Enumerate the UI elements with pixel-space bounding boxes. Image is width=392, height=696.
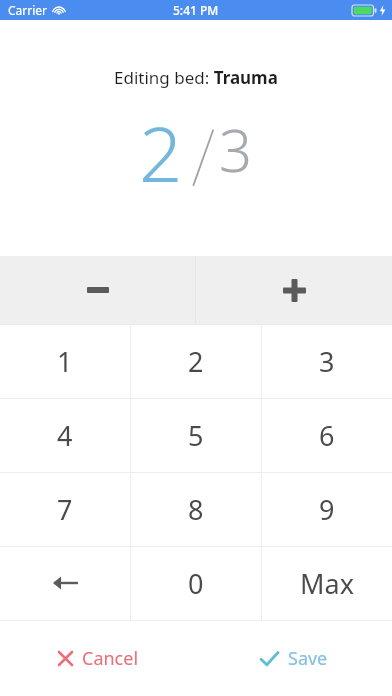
button[interactable]: 4 [0,398,130,472]
button[interactable]: Increase [196,256,392,324]
button[interactable]: 0 [131,546,261,620]
staticText: 9 [319,491,335,528]
button[interactable]: Max [262,546,392,620]
staticText: 3 [319,343,335,380]
staticText: 2 [139,101,183,191]
button[interactable]: Save [196,620,392,696]
button[interactable]: 6 [262,398,392,472]
staticText: 7 [57,491,73,528]
staticText: 1 [57,343,73,380]
button[interactable]: Backspace [0,546,130,620]
button[interactable]: 9 [262,472,392,546]
staticText: 6 [319,417,335,454]
button[interactable]: 7 [0,472,130,546]
button[interactable]: 1 [0,324,130,398]
staticText: Max [300,565,354,602]
staticText: Carrier [8,2,48,18]
staticText: 5:41 PM [173,2,219,18]
staticText: 4 [57,417,73,454]
staticText: 3 [219,110,253,189]
button[interactable]: 3 [262,324,392,398]
button[interactable]: Cancel [0,620,196,696]
staticText: Editing bed: Trauma [114,66,278,89]
staticText: 5 [188,417,204,454]
button[interactable]: 2 [131,324,261,398]
staticText: 0 [188,565,204,602]
button[interactable]: 8 [131,472,261,546]
button[interactable]: Decrease [0,256,195,324]
staticText: 2 [188,343,204,380]
button[interactable]: 5 [131,398,261,472]
staticText: 8 [188,491,204,528]
staticText: Save [288,646,328,671]
staticText: Cancel [82,646,139,671]
